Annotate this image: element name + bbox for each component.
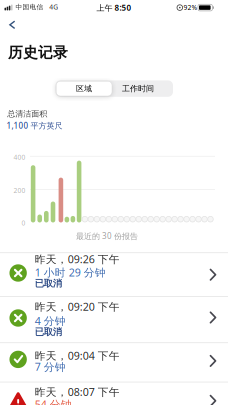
button[interactable] [4, 17, 20, 33]
button[interactable]: 昨天，09:20 下午 [0, 297, 228, 342]
staticText: 总清洁面积 [7, 109, 47, 119]
staticText: 1,100 平方英尺 [6, 120, 62, 131]
staticText: 已取消 [35, 278, 62, 289]
staticText: 中国电信 [15, 3, 43, 11]
staticText: 昨天，09:20 下午 [35, 299, 120, 314]
staticText: 0 [21, 219, 25, 227]
staticText: 区域 [76, 84, 92, 93]
staticText: 54 分钟 [35, 397, 72, 405]
staticText: 92% [183, 3, 197, 12]
staticText: 4 分钟 [35, 314, 66, 328]
staticText: 已取消 [35, 326, 62, 338]
button[interactable]: 昨天，09:26 下午 [0, 253, 228, 296]
staticText: 昨天，09:26 下午 [35, 252, 120, 266]
staticText: 上午 8:50 [96, 2, 131, 13]
staticText: 昨天，08:07 下午 [35, 385, 120, 399]
staticText: 最近的 30 份报告 [76, 231, 138, 241]
staticText: 200 [13, 186, 25, 195]
staticText: 7 分钟 [35, 360, 66, 374]
button[interactable]: 区域 [56, 81, 112, 96]
staticText: 昨天，09:04 下午 [35, 348, 120, 363]
staticText: 工作时间 [122, 84, 154, 93]
staticText: 历史记录 [8, 44, 68, 62]
button[interactable]: 昨天，08:07 下午 [0, 382, 228, 405]
staticText: 4G [49, 3, 58, 11]
button[interactable]: 昨天，09:04 下午 [0, 343, 228, 382]
button[interactable]: 工作时间 [109, 81, 167, 97]
staticText: 400 [13, 153, 25, 162]
staticText: 1 小时 29 分钟 [35, 265, 106, 279]
